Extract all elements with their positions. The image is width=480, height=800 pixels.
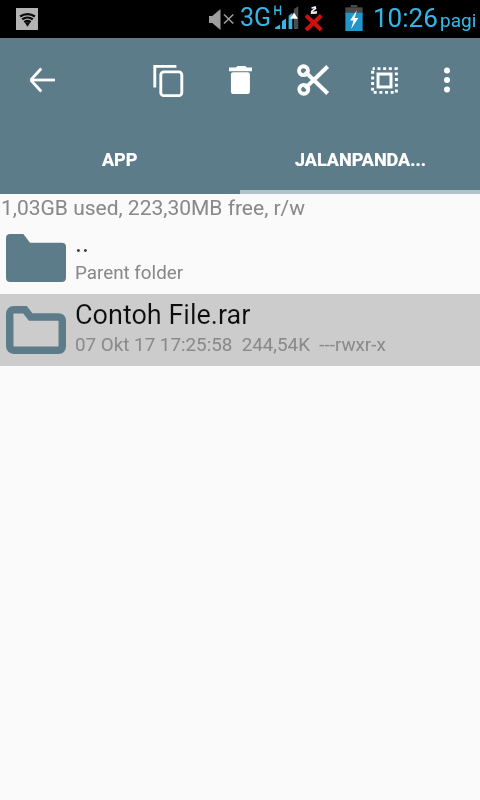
- staticText: Parent folder: [75, 262, 184, 284]
- staticText: Contoh File.rar: [75, 299, 251, 331]
- button[interactable]: Cut: [288, 53, 336, 107]
- staticText: JALANPANDA...: [295, 149, 426, 170]
- button[interactable]: Select all: [360, 53, 408, 107]
- button[interactable]: More options: [423, 53, 471, 107]
- button[interactable]: JALANPANDA...: [240, 128, 480, 190]
- staticText: ..: [75, 227, 90, 259]
- staticText: 1,03GB used, 223,30MB free, r/w: [1, 196, 306, 221]
- button[interactable]: Copy: [144, 53, 192, 107]
- staticText: APP: [102, 149, 138, 170]
- button[interactable]: Contoh File.rar: [0, 294, 480, 366]
- staticText: 3G: [240, 3, 272, 32]
- staticText: 10:26: [373, 3, 438, 33]
- staticText: 07 Okt 17 17:25:58 244,54K ---rwxr-x: [75, 334, 386, 356]
- button[interactable]: Delete: [216, 53, 264, 107]
- button[interactable]: APP: [0, 128, 240, 190]
- staticText: pagi: [440, 9, 477, 31]
- button[interactable]: Back: [18, 53, 66, 107]
- button[interactable]: ..: [0, 222, 480, 294]
